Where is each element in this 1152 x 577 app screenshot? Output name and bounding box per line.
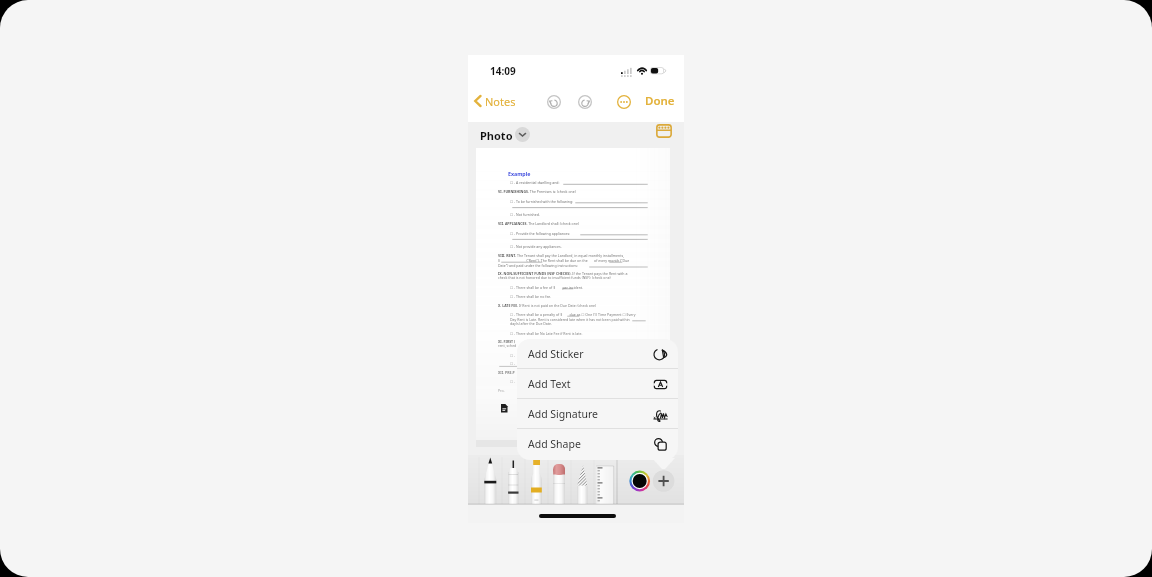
staticText: ☐ - There shall be No Late Fee if Rent i…: [510, 331, 583, 336]
staticText: ☐ - Provide the following appliances:: [510, 231, 571, 236]
staticText: Date") and paid under the following inst…: [498, 263, 578, 268]
button[interactable]: Add: [651, 469, 673, 491]
staticText: Example: [508, 170, 531, 177]
button[interactable]: Add Signature: [517, 399, 678, 429]
button[interactable]: Eraser: [548, 455, 571, 505]
staticText: ☐ - There shall be a fee of $ per incide…: [510, 285, 584, 290]
button[interactable]: Add Sticker: [517, 339, 678, 369]
button[interactable]: Pen: [479, 455, 502, 505]
button[interactable]: More options: [617, 95, 631, 109]
staticText: VIII. RENT. The Tenant shall pay the Lan…: [498, 253, 625, 258]
staticText: Day Rent is Late. Rent is considered lat…: [510, 317, 630, 322]
button[interactable]: Color picker: [626, 469, 648, 491]
staticText: Pro-: [498, 388, 505, 393]
staticText: ☐ - A residential dwelling and:: [510, 180, 560, 185]
staticText: ☐ -: [510, 361, 517, 366]
button[interactable]: Add Shape: [517, 429, 678, 459]
staticText: XI. FIRST (: [498, 339, 516, 344]
staticText: day(s) after the Due Date.: [510, 321, 552, 326]
button[interactable]: Marker: [502, 455, 525, 505]
staticText: Add Shape: [528, 437, 581, 451]
staticText: Photo: [480, 128, 513, 143]
staticText: Add Sticker: [528, 347, 584, 361]
button[interactable]: Ruler: [594, 455, 617, 505]
button[interactable]: Show markup toolbar: [656, 124, 672, 138]
staticText: ☐ - To be furnished with the following:: [510, 199, 573, 204]
button[interactable]: Lasso: [571, 455, 594, 505]
button[interactable]: Add Text: [517, 369, 678, 399]
staticText: ☐ - There shall be no fee.: [510, 294, 552, 299]
staticText: Add Text: [528, 377, 571, 391]
staticText: ☐ -: [510, 353, 517, 358]
staticText: check that is not honored due to insuffi…: [498, 275, 611, 280]
staticText: Done: [645, 93, 675, 109]
staticText: ☐ - Not provide any appliances.: [510, 244, 562, 249]
staticText: IX. NON-SUFFICIENT FUNDS (NSF CHECKS). I…: [498, 271, 628, 276]
staticText: ☐ -: [510, 379, 517, 384]
button[interactable]: Highlighter: [525, 455, 548, 505]
button[interactable]: Done: [643, 91, 677, 111]
button[interactable]: Notes: [472, 91, 518, 111]
button[interactable]: Expand photo options: [515, 127, 530, 142]
staticText: ☐ - There shall be a penalty of $ due as…: [510, 312, 636, 317]
staticText: $ ("Rent"). The Rent shall be due on the…: [498, 258, 630, 263]
staticText: Add Signature: [528, 407, 598, 421]
staticText: 14:09: [490, 64, 516, 78]
staticText: XII. PRE-P: [498, 370, 515, 375]
button[interactable]: Undo: [547, 95, 561, 109]
button[interactable]: Redo: [578, 95, 592, 109]
staticText: X. LATE FEE. If Rent is not paid on the …: [498, 303, 597, 308]
staticText: Notes: [485, 94, 516, 109]
staticText: VII. APPLIANCES. The Landlord shall: (ch…: [498, 221, 579, 226]
staticText: VI. FURNISHINGS. The Premises is: (check…: [498, 189, 576, 194]
staticText: rent, sched: [498, 343, 517, 348]
staticText: ☐ - Not furnished.: [510, 212, 540, 217]
